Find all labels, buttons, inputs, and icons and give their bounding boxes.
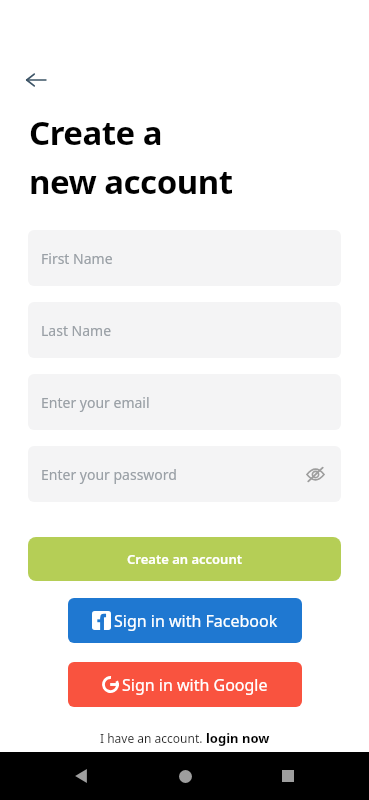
staticText: Sign in with Google [122,674,268,696]
button[interactable]: Enter your password [28,446,341,502]
button[interactable]: Toggle password visibility [297,456,333,492]
button[interactable]: Sign in with Google [68,662,302,707]
button[interactable]: Recent apps [266,754,310,798]
staticText: First Name [41,249,113,268]
staticText: Enter your email [41,393,150,412]
staticText: Enter your password [41,465,177,484]
button[interactable]: Back [59,754,103,798]
staticText: login now [206,729,270,747]
button[interactable]: Create an account [28,537,341,581]
staticText: Create an account [127,550,242,568]
staticText: Last Name [41,321,112,340]
staticText: new account [29,159,233,204]
button[interactable]: Enter your email [28,374,341,430]
button[interactable]: Home [163,754,207,798]
button[interactable]: Sign in with Facebook [68,598,302,643]
staticText: Create a [29,110,163,155]
staticText: I have an account. [100,730,206,746]
button[interactable]: Back [14,58,58,102]
button[interactable]: Last Name [28,302,341,358]
button[interactable]: I have an account. [0,729,369,747]
staticText: Sign in with Facebook [114,610,278,632]
button[interactable]: First Name [28,230,341,286]
